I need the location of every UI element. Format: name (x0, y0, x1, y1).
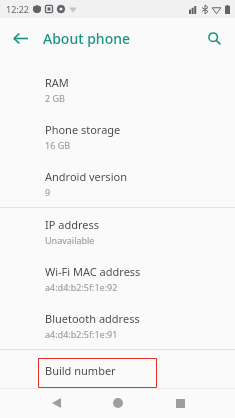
button[interactable]: Back (41, 388, 71, 418)
button[interactable]: IP address (0, 208, 235, 255)
staticText: Bluetooth address (45, 311, 140, 326)
button[interactable]: Home (103, 388, 133, 418)
button[interactable]: Android version (0, 160, 235, 207)
staticText: About phone (43, 29, 131, 48)
staticText: 9 (45, 186, 51, 198)
button[interactable]: Back (8, 26, 32, 50)
button[interactable]: Search (202, 26, 226, 50)
staticText: 12:22 (6, 3, 30, 15)
staticText: Wi-Fi MAC address (45, 264, 141, 279)
staticText: 16 GB (45, 139, 71, 151)
button[interactable]: RAM (0, 66, 235, 113)
staticText: Phone storage (45, 122, 121, 137)
button[interactable]: Phone storage (0, 113, 235, 160)
staticText: IP address (45, 217, 100, 232)
button[interactable]: Bluetooth address (0, 302, 235, 349)
staticText: RAM (45, 75, 69, 90)
staticText: Build number (45, 363, 116, 378)
staticText: Unavailable (45, 234, 95, 246)
button[interactable]: Wi-Fi MAC address (0, 255, 235, 302)
staticText: 2 GB (45, 92, 65, 104)
staticText: Android version (45, 169, 127, 184)
staticText: a4:d4:b2:5f:1e:91 (45, 328, 118, 340)
staticText: a4:d4:b2:5f:1e:92 (45, 281, 118, 293)
button[interactable]: Build number (0, 350, 235, 388)
button[interactable]: Recent apps (165, 388, 195, 418)
